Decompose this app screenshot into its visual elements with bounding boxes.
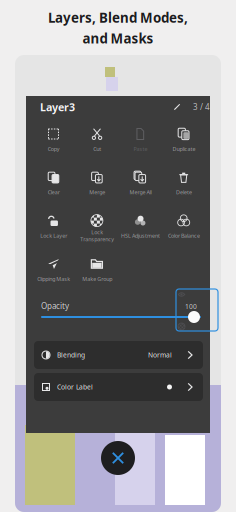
staticText: Cut	[93, 145, 101, 153]
staticText: Clear	[47, 189, 59, 196]
button[interactable]: Color Balance	[162, 213, 205, 243]
staticText: HSL Adjustment	[121, 232, 160, 239]
button[interactable]: HSL Adjustment	[119, 213, 162, 243]
button[interactable]: Blending	[34, 341, 203, 369]
staticText: Make Group	[82, 275, 112, 282]
button[interactable]: Lock Layer	[32, 213, 75, 243]
staticText: Merge	[89, 189, 105, 196]
button[interactable]: Rename layer	[173, 103, 180, 110]
staticText: Opacity	[41, 301, 69, 311]
staticText: 100	[185, 302, 197, 311]
button[interactable]: Make Group	[75, 256, 118, 286]
staticText: Delete	[176, 189, 192, 196]
staticText: Clipping Mask	[37, 275, 70, 282]
staticText: Blending	[57, 351, 85, 359]
button[interactable]: Close	[101, 441, 135, 475]
button[interactable]: Merge	[75, 169, 118, 199]
button[interactable]: Color Label	[34, 373, 203, 401]
staticText: Copy	[47, 145, 59, 153]
staticText: Paste	[133, 145, 147, 153]
staticText: Layer3	[40, 100, 75, 114]
staticText: Layers, Blend Modes,	[48, 9, 188, 26]
staticText: Color Label	[57, 383, 93, 391]
staticText: and Masks	[82, 29, 153, 47]
staticText: Lock Layer	[40, 232, 67, 239]
button[interactable]: Delete	[162, 169, 205, 199]
button[interactable]: Clear	[32, 169, 75, 199]
button[interactable]: Merge All	[119, 169, 162, 199]
staticText: 3 / 4	[193, 102, 210, 112]
staticText: Duplicate	[172, 145, 195, 153]
staticText: Lock Transparency	[80, 228, 114, 243]
button[interactable]: Copy	[32, 126, 75, 156]
button[interactable]: Paste	[119, 126, 162, 156]
staticText: Color Balance	[168, 232, 200, 239]
button[interactable]: Lock Transparency	[75, 213, 118, 243]
staticText: Normal	[148, 351, 172, 359]
button[interactable]: Cut	[75, 126, 118, 156]
staticText: Merge All	[129, 189, 151, 196]
button[interactable]: Clipping Mask	[32, 256, 75, 286]
button[interactable]: Duplicate	[162, 126, 205, 156]
